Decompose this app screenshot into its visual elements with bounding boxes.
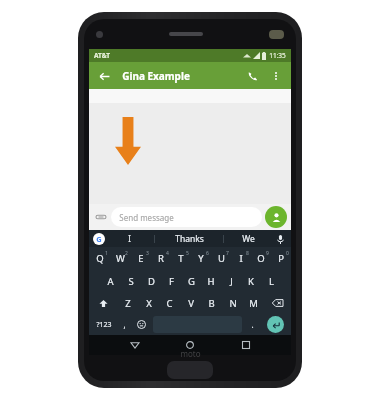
staticText: Y: [198, 252, 204, 265]
staticText: R: [158, 252, 164, 265]
button[interactable]: Backspace: [264, 292, 291, 314]
staticText: 5: [186, 250, 189, 257]
staticText: O: [257, 252, 265, 265]
staticText: ?123: [96, 320, 112, 330]
staticText: ,: [123, 319, 126, 330]
staticText: N: [229, 297, 237, 310]
staticText: B: [208, 297, 215, 310]
staticText: J: [230, 275, 233, 288]
button[interactable]: ,: [118, 314, 131, 335]
staticText: 9: [266, 250, 269, 257]
button[interactable]: T: [171, 247, 191, 270]
button[interactable]: N: [222, 292, 243, 314]
staticText: Q: [96, 252, 104, 265]
staticText: K: [248, 275, 254, 288]
staticText: I: [128, 233, 131, 244]
staticText: C: [166, 297, 173, 310]
button[interactable]: Send: [265, 206, 287, 228]
staticText: S: [128, 275, 134, 288]
button[interactable]: Attach: [93, 209, 109, 225]
button[interactable]: Shift: [89, 292, 117, 314]
staticText: 2: [125, 250, 128, 257]
button[interactable]: C: [159, 292, 180, 314]
staticText: A: [107, 275, 114, 288]
staticText: 3: [146, 250, 149, 257]
button[interactable]: More options: [268, 68, 284, 84]
staticText: .: [251, 319, 254, 330]
button[interactable]: Call: [244, 67, 262, 85]
button[interactable]: O: [251, 247, 271, 270]
button[interactable]: B: [201, 292, 222, 314]
staticText: Thanks: [175, 233, 204, 245]
button[interactable]: R: [151, 247, 171, 270]
staticText: 8: [246, 250, 249, 257]
button[interactable]: E: [131, 247, 151, 270]
button[interactable]: I: [231, 247, 251, 270]
button[interactable]: H: [201, 270, 221, 292]
staticText: L: [269, 275, 274, 288]
button[interactable]: U: [211, 247, 231, 270]
button[interactable]: Thanks: [155, 230, 223, 247]
button[interactable]: Google: [93, 233, 105, 245]
button[interactable]: Voice input: [273, 232, 287, 246]
staticText: AT&T: [94, 51, 110, 60]
staticText: M: [249, 297, 258, 310]
button[interactable]: I: [105, 230, 154, 247]
staticText: V: [188, 297, 194, 310]
staticText: We: [242, 233, 255, 245]
button[interactable]: D: [141, 270, 161, 292]
staticText: U: [218, 252, 225, 265]
staticText: P: [278, 252, 284, 265]
button[interactable]: V: [180, 292, 201, 314]
button[interactable]: M: [243, 292, 264, 314]
button[interactable]: F: [161, 270, 181, 292]
button[interactable]: A: [100, 270, 121, 292]
button[interactable]: We: [224, 230, 273, 247]
button[interactable]: G: [181, 270, 201, 292]
button[interactable]: .: [244, 314, 260, 335]
button[interactable]: K: [241, 270, 261, 292]
staticText: F: [169, 275, 174, 288]
staticText: 0: [286, 250, 289, 257]
button[interactable]: Z: [117, 292, 138, 314]
button[interactable]: ?123: [89, 314, 118, 335]
staticText: Send message: [119, 212, 174, 223]
button[interactable]: Enter: [267, 316, 284, 333]
button[interactable]: Send message: [111, 207, 262, 227]
staticText: 4: [166, 250, 169, 257]
button[interactable]: J: [221, 270, 241, 292]
button[interactable]: Back: [96, 68, 112, 84]
staticText: X: [146, 297, 152, 310]
staticText: D: [148, 275, 155, 288]
staticText: H: [207, 275, 215, 288]
staticText: Z: [125, 297, 131, 310]
staticText: G: [188, 275, 195, 288]
button[interactable]: Recent apps: [236, 335, 256, 355]
staticText: Gina Example: [122, 69, 190, 83]
staticText: W: [116, 252, 125, 265]
button[interactable]: L: [261, 270, 281, 292]
staticText: G: [96, 234, 102, 244]
staticText: moto: [180, 348, 201, 359]
button[interactable]: Emoji: [131, 314, 151, 335]
staticText: 6: [206, 250, 209, 257]
button[interactable]: X: [138, 292, 159, 314]
button[interactable]: Home: [180, 335, 200, 355]
button[interactable]: P: [271, 247, 291, 270]
staticText: T: [178, 252, 184, 265]
button[interactable]: Y: [191, 247, 211, 270]
staticText: E: [138, 252, 144, 265]
staticText: I: [239, 252, 243, 265]
button[interactable]: Gina Example: [122, 62, 244, 89]
staticText: 1: [105, 250, 108, 257]
button[interactable]: W: [110, 247, 131, 270]
staticText: 11:35: [269, 51, 286, 60]
button[interactable]: S: [121, 270, 141, 292]
staticText: 7: [226, 250, 229, 257]
button[interactable]: Q: [89, 247, 110, 270]
button[interactable]: Back: [125, 335, 145, 355]
